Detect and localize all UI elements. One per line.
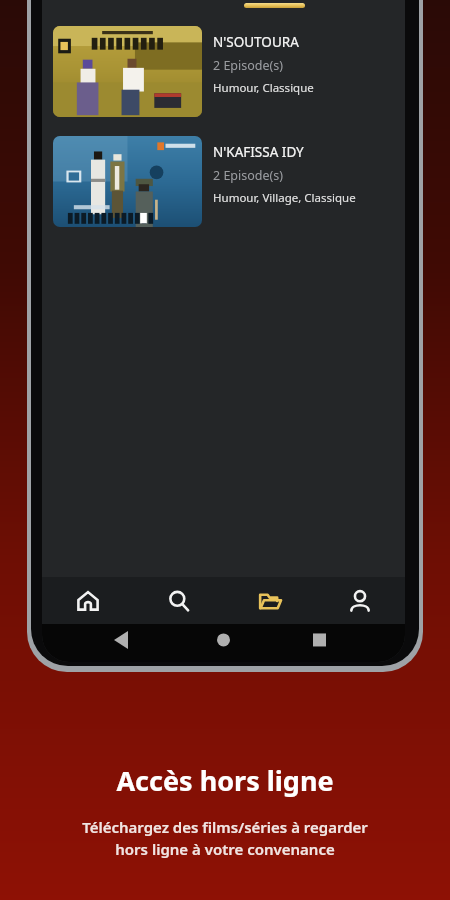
staticText: Humour, Classique — [213, 80, 314, 96]
staticText: Humour, Village, Classique — [213, 190, 356, 206]
staticText: N'KAFISSA IDY — [213, 143, 304, 161]
button[interactable]: Downloads — [224, 577, 315, 624]
button[interactable]: N'KAFISSA IDY — [42, 117, 405, 227]
staticText: Accès hors ligne — [116, 762, 334, 799]
button[interactable]: N'SOUTOURA — [42, 11, 405, 117]
staticText: 2 Episode(s) — [213, 57, 284, 74]
staticText: 2 Episode(s) — [213, 167, 284, 184]
button[interactable]: Profile — [315, 577, 405, 624]
staticText: N'SOUTOURA — [213, 33, 299, 51]
button[interactable]: Search — [133, 577, 224, 624]
staticText: Téléchargez des films/séries à regarder … — [82, 817, 368, 860]
button[interactable]: Home — [42, 577, 133, 624]
